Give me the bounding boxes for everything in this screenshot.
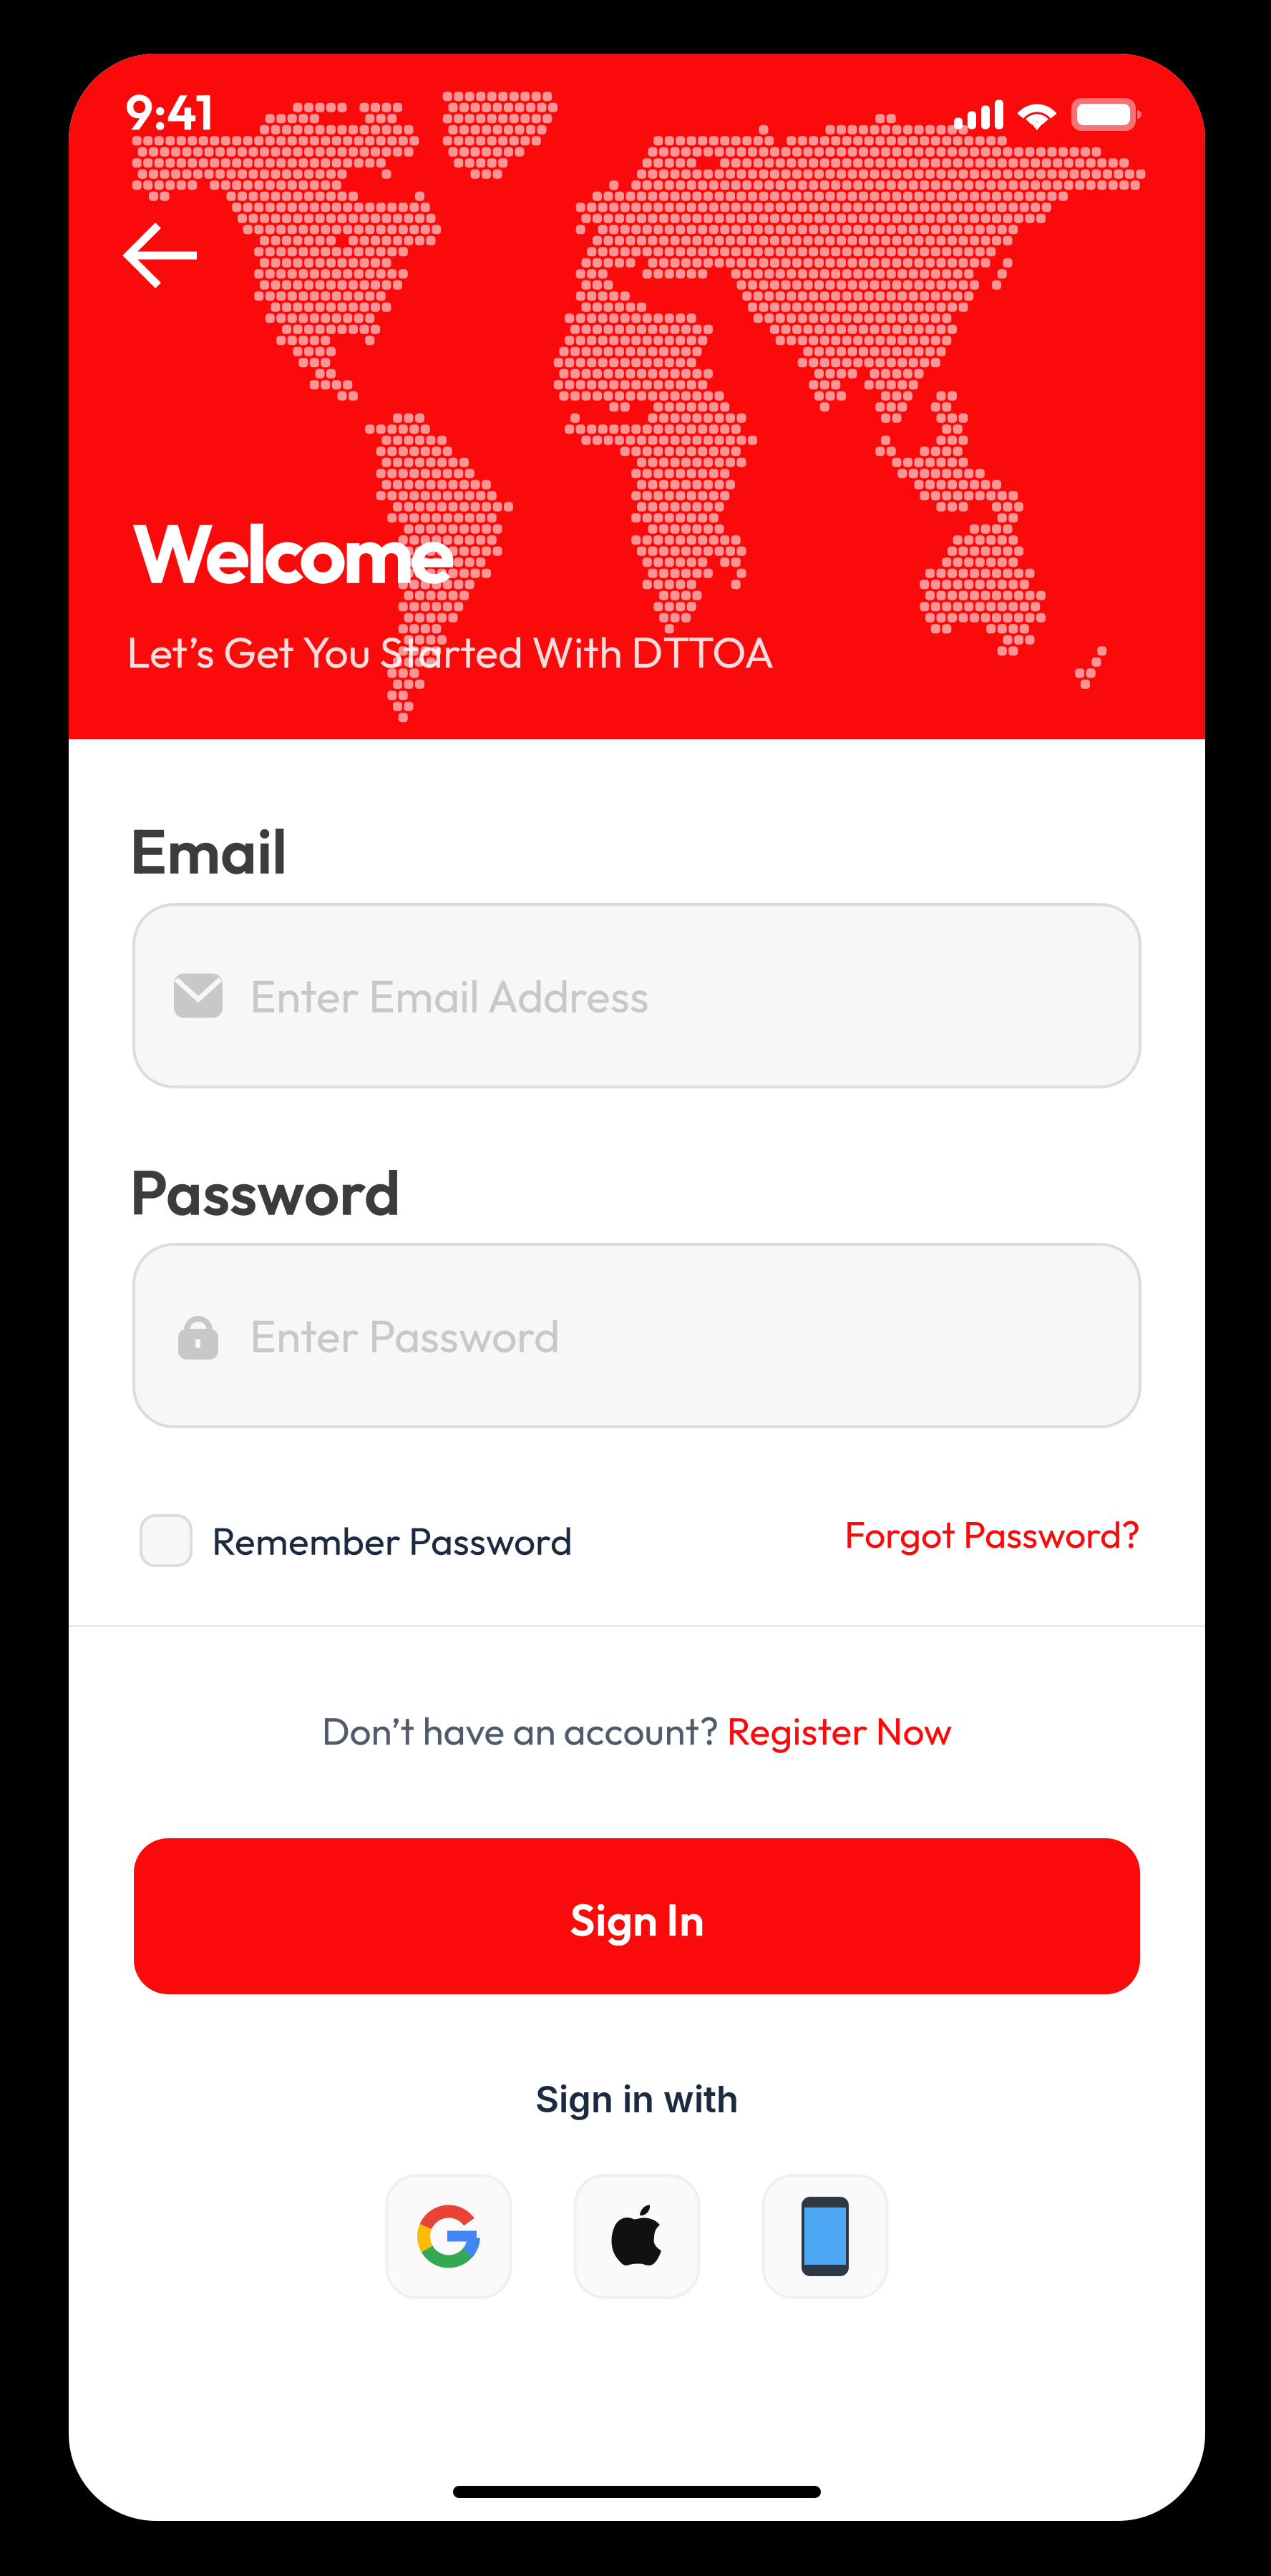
button[interactable]: Sign in with Google <box>387 2175 511 2298</box>
staticText: Forgot Password? <box>844 1511 1140 1557</box>
staticText: Register Now <box>727 1707 952 1755</box>
staticText: Let’s Get You Started With DTTOA <box>127 625 774 679</box>
staticText: Don’t have an account? <box>322 1707 727 1755</box>
staticText: Email <box>130 811 287 890</box>
staticText: Remember Password <box>212 1517 573 1565</box>
button[interactable]: Register Now <box>727 1707 952 1755</box>
button[interactable]: Enter Password <box>134 1244 1140 1427</box>
staticText: Welcome <box>132 501 455 604</box>
button[interactable]: Sign In <box>134 1838 1140 1994</box>
button[interactable]: Sign in with Apple <box>575 2175 699 2298</box>
staticText: Sign in with <box>535 2077 739 2121</box>
button[interactable]: Forgot Password? <box>782 1511 1140 1557</box>
staticText: 9:41 <box>125 80 213 143</box>
staticText: Password <box>130 1153 401 1231</box>
staticText: Enter Email Address <box>250 967 649 1024</box>
staticText: Sign In <box>570 1891 704 1947</box>
staticText: Enter Password <box>250 1307 560 1364</box>
button[interactable]: Back <box>121 220 207 291</box>
button[interactable]: Enter Email Address <box>134 904 1140 1087</box>
button[interactable]: Remember Password <box>141 1516 573 1566</box>
button[interactable]: Sign in with phone number <box>763 2175 887 2298</box>
